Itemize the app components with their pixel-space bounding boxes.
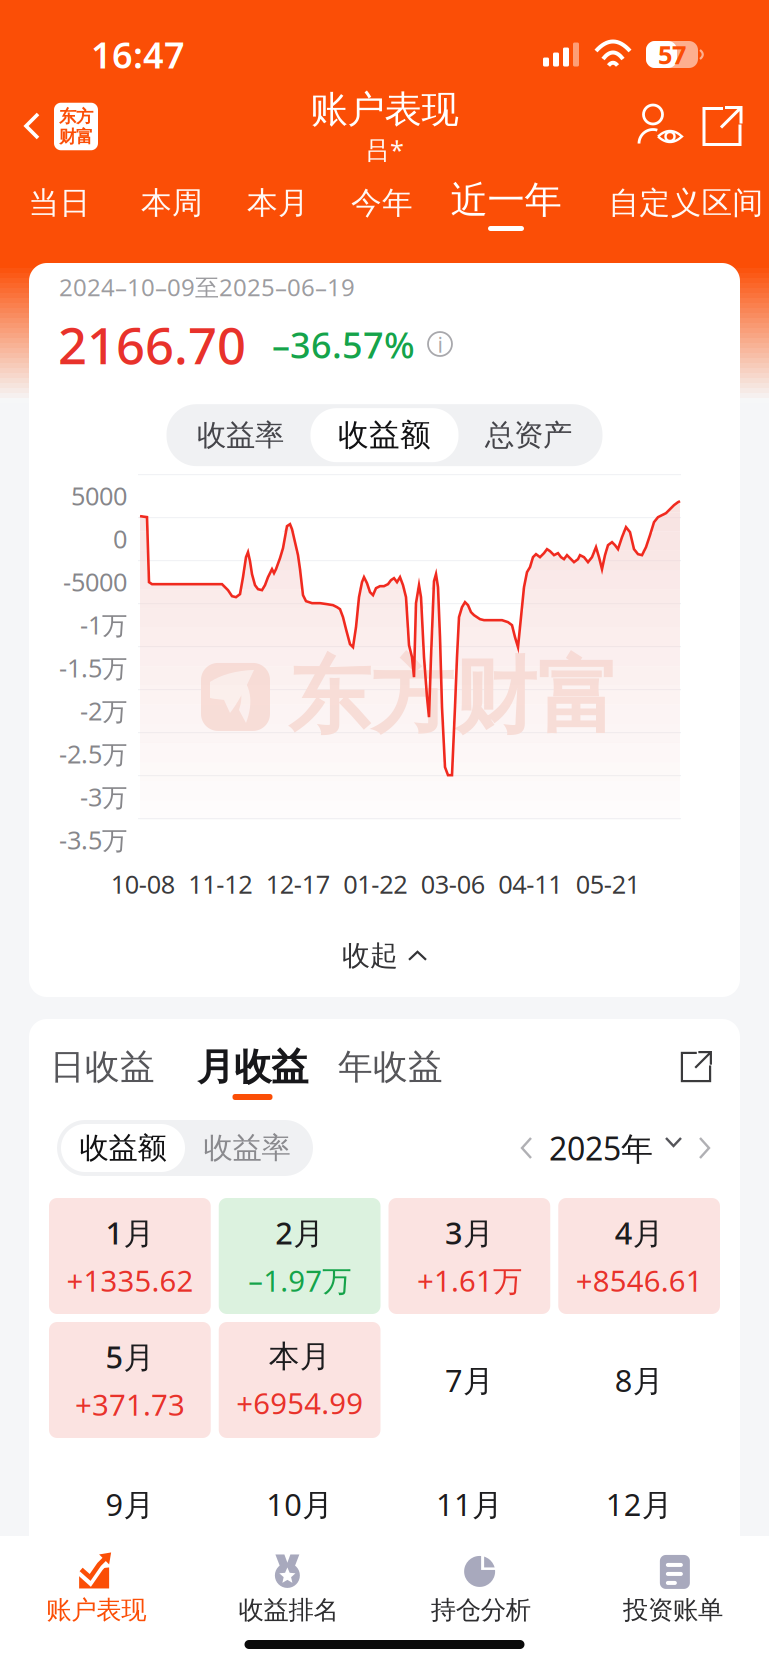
button[interactable]: 年收益: [338, 1045, 443, 1089]
staticText: 年收益: [338, 1046, 443, 1088]
staticText: 2025年: [549, 1127, 653, 1169]
button[interactable]: Share: [699, 103, 745, 149]
staticText: +1335.62: [66, 1261, 193, 1300]
staticText: –1.97万: [248, 1261, 351, 1300]
button[interactable]: 本月: [225, 176, 331, 230]
button[interactable]: 收益额: [61, 1124, 185, 1172]
button[interactable]: 11月: [388, 1446, 550, 1562]
staticText: 吕*: [365, 133, 404, 166]
button[interactable]: 账户表现: [0, 1536, 192, 1640]
button[interactable]: 收起: [29, 901, 740, 985]
button[interactable]: 2月: [219, 1198, 381, 1314]
button[interactable]: 收益率: [185, 1124, 309, 1172]
staticText: 10-08: [111, 867, 175, 901]
button[interactable]: 收益率: [170, 408, 310, 462]
staticText: 自定义区间: [608, 184, 763, 222]
staticText: 9月: [105, 1484, 154, 1524]
staticText: 投资账单: [623, 1594, 723, 1625]
button[interactable]: 9月: [49, 1446, 211, 1562]
button[interactable]: Share: [678, 1045, 714, 1085]
staticText: 03-06: [421, 867, 485, 901]
button[interactable]: 8月: [558, 1322, 720, 1438]
staticText: 东方财富: [288, 646, 620, 748]
staticText: 当日: [28, 184, 90, 222]
staticText: 收益率: [197, 417, 284, 453]
button[interactable]: 3月: [388, 1198, 550, 1314]
staticText: -3.5万: [59, 823, 127, 856]
staticText: 7月: [445, 1360, 494, 1400]
staticText: 日收益: [50, 1046, 155, 1088]
button[interactable]: Back: [0, 95, 98, 158]
staticText: 收益额: [338, 416, 431, 454]
button[interactable]: 4月: [558, 1198, 720, 1314]
staticText: 月收益: [197, 1044, 308, 1090]
staticText: 57: [658, 38, 686, 71]
button[interactable]: 本周: [119, 176, 225, 230]
staticText: 收益额: [79, 1130, 166, 1166]
staticText: 2024–10–09至2025–06–19: [59, 271, 355, 303]
staticText: 5月: [105, 1336, 154, 1377]
staticText: 11月: [436, 1484, 503, 1524]
button[interactable]: 7月: [388, 1322, 550, 1438]
staticText: 持仓分析: [431, 1594, 531, 1625]
staticText: 本周: [141, 184, 203, 222]
staticText: 3月: [445, 1212, 494, 1253]
staticText: 8月: [615, 1360, 664, 1400]
staticText: -3万: [80, 780, 127, 813]
button[interactable]: 1月: [49, 1198, 211, 1314]
staticText: 今年: [351, 184, 413, 222]
staticText: 0: [113, 522, 127, 555]
staticText: 本月: [247, 184, 309, 222]
staticText: 近一年: [450, 177, 561, 223]
button[interactable]: 持仓分析: [384, 1536, 577, 1640]
staticText: 01-22: [343, 867, 407, 901]
staticText: -2万: [80, 694, 127, 727]
staticText: 12月: [606, 1484, 673, 1524]
button[interactable]: 自定义区间: [579, 176, 769, 230]
staticText: 本月: [269, 1338, 331, 1375]
staticText: 1月: [105, 1212, 154, 1253]
button[interactable]: 10月: [219, 1446, 381, 1562]
button[interactable]: 12月: [558, 1446, 720, 1562]
button[interactable]: 5月: [49, 1322, 211, 1438]
button[interactable]: 收益额: [310, 408, 458, 462]
button[interactable]: 当日: [0, 176, 119, 230]
button[interactable]: Account visibility: [637, 102, 685, 150]
staticText: 10月: [266, 1484, 333, 1524]
staticText: 05-21: [576, 867, 640, 901]
staticText: 12-17: [266, 867, 330, 901]
staticText: 东方: [59, 106, 93, 127]
staticText: –36.57%: [272, 321, 415, 368]
staticText: 收起: [342, 939, 398, 973]
staticText: 收益率: [203, 1130, 290, 1166]
staticText: 11-12: [188, 867, 252, 901]
staticText: 2月: [275, 1212, 324, 1253]
staticText: 账户表现: [310, 87, 458, 133]
button[interactable]: Next year: [694, 1133, 714, 1163]
staticText: -5000: [63, 565, 127, 598]
button[interactable]: 投资账单: [577, 1536, 769, 1640]
staticText: i: [437, 330, 443, 359]
button[interactable]: 近一年: [433, 176, 579, 231]
staticText: -1万: [80, 608, 127, 641]
staticText: 总资产: [485, 417, 572, 453]
staticText: -1.5万: [59, 651, 127, 684]
staticText: +1.61万: [417, 1261, 522, 1300]
staticText: 收益排名: [238, 1594, 338, 1625]
button[interactable]: 收益排名: [192, 1536, 384, 1640]
button[interactable]: 本月: [219, 1322, 381, 1438]
staticText: 2166.70: [58, 311, 246, 378]
button[interactable]: 总资产: [458, 408, 598, 462]
staticText: 账户表现: [46, 1594, 146, 1625]
button[interactable]: 今年: [331, 176, 433, 230]
button[interactable]: Choose year: [665, 1133, 686, 1163]
staticText: 16:47: [91, 31, 185, 78]
staticText: +371.73: [75, 1385, 185, 1424]
staticText: 04-11: [498, 867, 562, 901]
button[interactable]: 月收益: [197, 1045, 308, 1100]
button[interactable]: 日收益: [50, 1045, 155, 1089]
button[interactable]: Previous year: [517, 1133, 537, 1163]
staticText: -2.5万: [59, 737, 127, 770]
staticText: +6954.99: [236, 1383, 363, 1422]
staticText: 财富: [59, 126, 93, 147]
